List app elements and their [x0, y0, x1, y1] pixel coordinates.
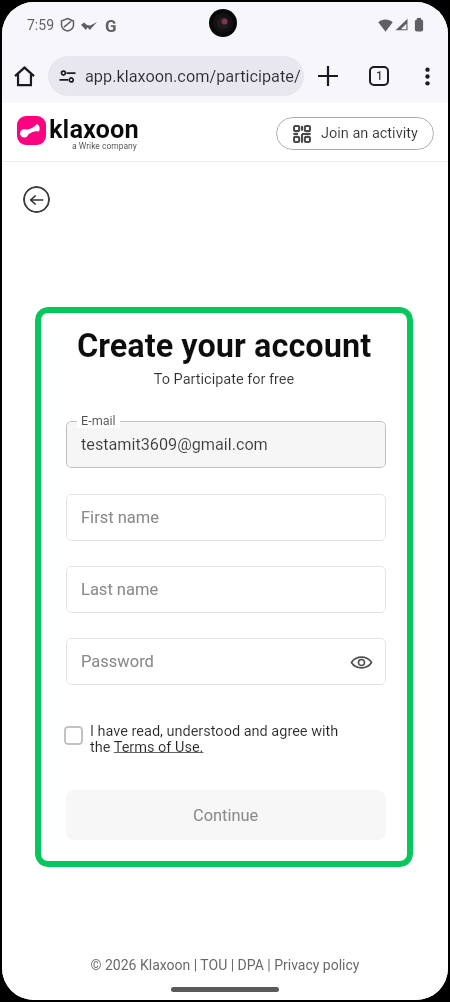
- button[interactable]: Join an activity: [276, 117, 434, 150]
- staticText: © 2026 Klaxoon | TOU | DPA | Privacy pol…: [2, 957, 448, 973]
- staticText: Create your account: [35, 327, 413, 365]
- button[interactable]: Switch tabs: [362, 59, 396, 93]
- button[interactable]: [66, 421, 386, 468]
- button[interactable]: Agree to terms: [64, 726, 83, 745]
- button[interactable]: Home: [9, 61, 39, 91]
- staticText: testamit3609@gmail.com: [81, 435, 268, 454]
- button[interactable]: Back: [23, 186, 50, 213]
- staticText: 7:59: [27, 17, 54, 33]
- button[interactable]: Last name: [66, 566, 386, 613]
- staticText: app.klaxoon.com/participate/: [85, 67, 301, 86]
- button[interactable]: New tab: [311, 59, 345, 93]
- button[interactable]: More options: [410, 59, 444, 93]
- staticText: 1: [376, 69, 383, 83]
- staticText: To Participate for free: [35, 371, 413, 388]
- staticText: I have read, understood and agree with t…: [90, 723, 344, 755]
- staticText: Join an activity: [321, 125, 418, 142]
- staticText: Password: [81, 652, 154, 671]
- staticText: G: [105, 16, 117, 36]
- button[interactable]: app.klaxoon.com/participate/: [48, 56, 304, 96]
- staticText: Continue: [193, 806, 259, 825]
- staticText: E-mail: [81, 413, 116, 428]
- button[interactable]: Continue: [66, 790, 386, 840]
- button[interactable]: First name: [66, 494, 386, 541]
- staticText: a Wrike company: [72, 141, 137, 151]
- staticText: Last name: [81, 580, 159, 599]
- staticText: klaxoon: [49, 114, 139, 144]
- staticText: First name: [81, 508, 160, 527]
- button[interactable]: Show password: [348, 649, 374, 675]
- button[interactable]: Password: [66, 638, 386, 685]
